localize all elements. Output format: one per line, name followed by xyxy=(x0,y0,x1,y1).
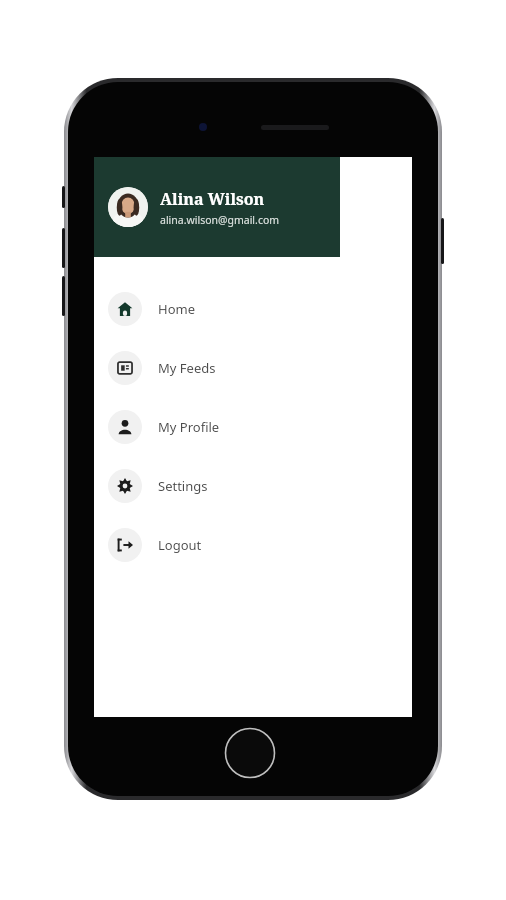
staticText: alina.wilson@gmail.com xyxy=(160,213,280,227)
button[interactable]: My Feeds xyxy=(94,338,340,397)
staticText: Alina Wilson xyxy=(160,188,265,210)
staticText: Settings xyxy=(158,477,208,495)
button[interactable]: Settings xyxy=(94,456,340,515)
staticText: My Profile xyxy=(158,418,220,436)
staticText: Home xyxy=(158,300,195,318)
button[interactable]: My Profile xyxy=(94,397,340,456)
button[interactable]: Logout xyxy=(94,515,340,574)
staticText: Logout xyxy=(158,536,202,554)
button[interactable]: Home xyxy=(94,279,340,338)
staticText: My Feeds xyxy=(158,359,216,377)
